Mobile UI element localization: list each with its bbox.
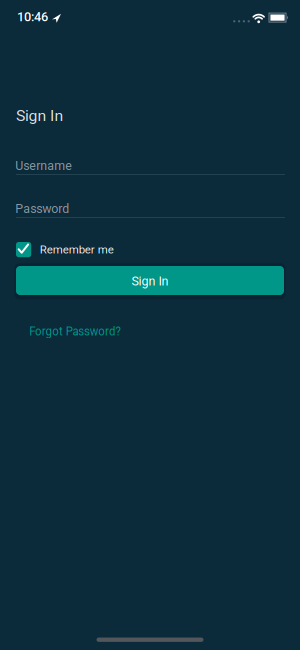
button[interactable]: Remember me [0,0,300,650]
staticText: Password [15,201,69,216]
staticText: Remember me [40,243,114,256]
staticText: Forgot Password? [29,324,125,338]
staticText: Username [15,158,72,173]
button[interactable]: Password [0,189,300,229]
button[interactable]: Forgot Password? [0,0,300,650]
button[interactable]: Username [0,146,300,186]
button[interactable]: Sign In [0,0,300,650]
staticText: Sign In [16,108,58,124]
staticText: Sign In [131,274,168,289]
staticText: 10:46 [17,9,48,24]
